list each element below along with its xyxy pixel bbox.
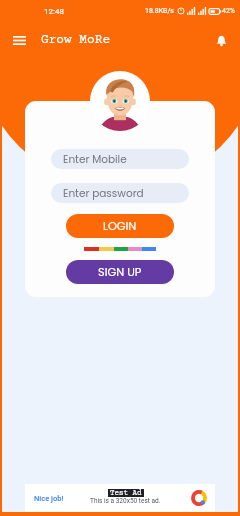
button[interactable]: Menu — [6, 27, 32, 53]
staticText: Enter Mobile — [63, 152, 127, 167]
button[interactable]: SIGN UP — [66, 260, 174, 284]
button[interactable]: Nice job! — [25, 484, 215, 512]
staticText: Enter password — [63, 186, 144, 201]
button[interactable]: Notifications — [209, 28, 233, 52]
staticText: 12:48 — [44, 7, 64, 16]
staticText: Test Ad — [110, 489, 142, 497]
staticText: 18.8KB/s — [145, 7, 174, 15]
button[interactable]: Enter password — [51, 183, 189, 203]
button[interactable]: LOGIN — [66, 214, 174, 238]
button[interactable]: Enter Mobile — [51, 149, 189, 169]
staticText: Nice job! — [34, 494, 64, 503]
staticText: Grow MoRe — [41, 33, 111, 47]
staticText: This is a 320x50 test ad. — [90, 497, 161, 505]
staticText: 42% — [222, 7, 235, 15]
staticText: SIGN UP — [98, 264, 142, 280]
staticText: LOGIN — [103, 218, 137, 234]
